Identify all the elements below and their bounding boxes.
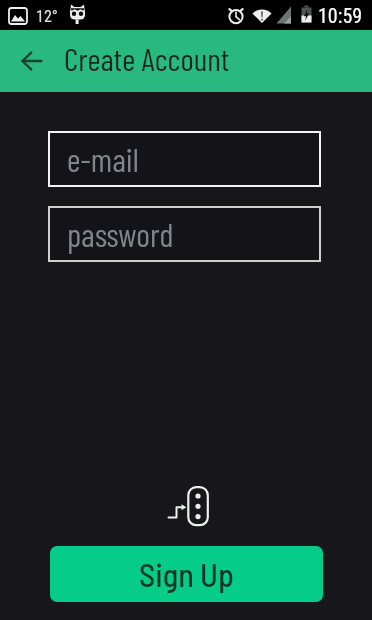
staticText: Create Account	[64, 39, 230, 77]
button[interactable]: e-mail	[48, 131, 321, 187]
button[interactable]: password	[48, 206, 321, 262]
button[interactable]: Sign Up	[50, 546, 323, 602]
staticText: Sign Up	[139, 555, 234, 593]
button[interactable]	[8, 37, 56, 85]
staticText: 12°	[36, 7, 58, 26]
staticText: 10:59	[318, 4, 363, 27]
staticText: e-mail	[67, 139, 139, 179]
staticText: password	[67, 214, 174, 254]
